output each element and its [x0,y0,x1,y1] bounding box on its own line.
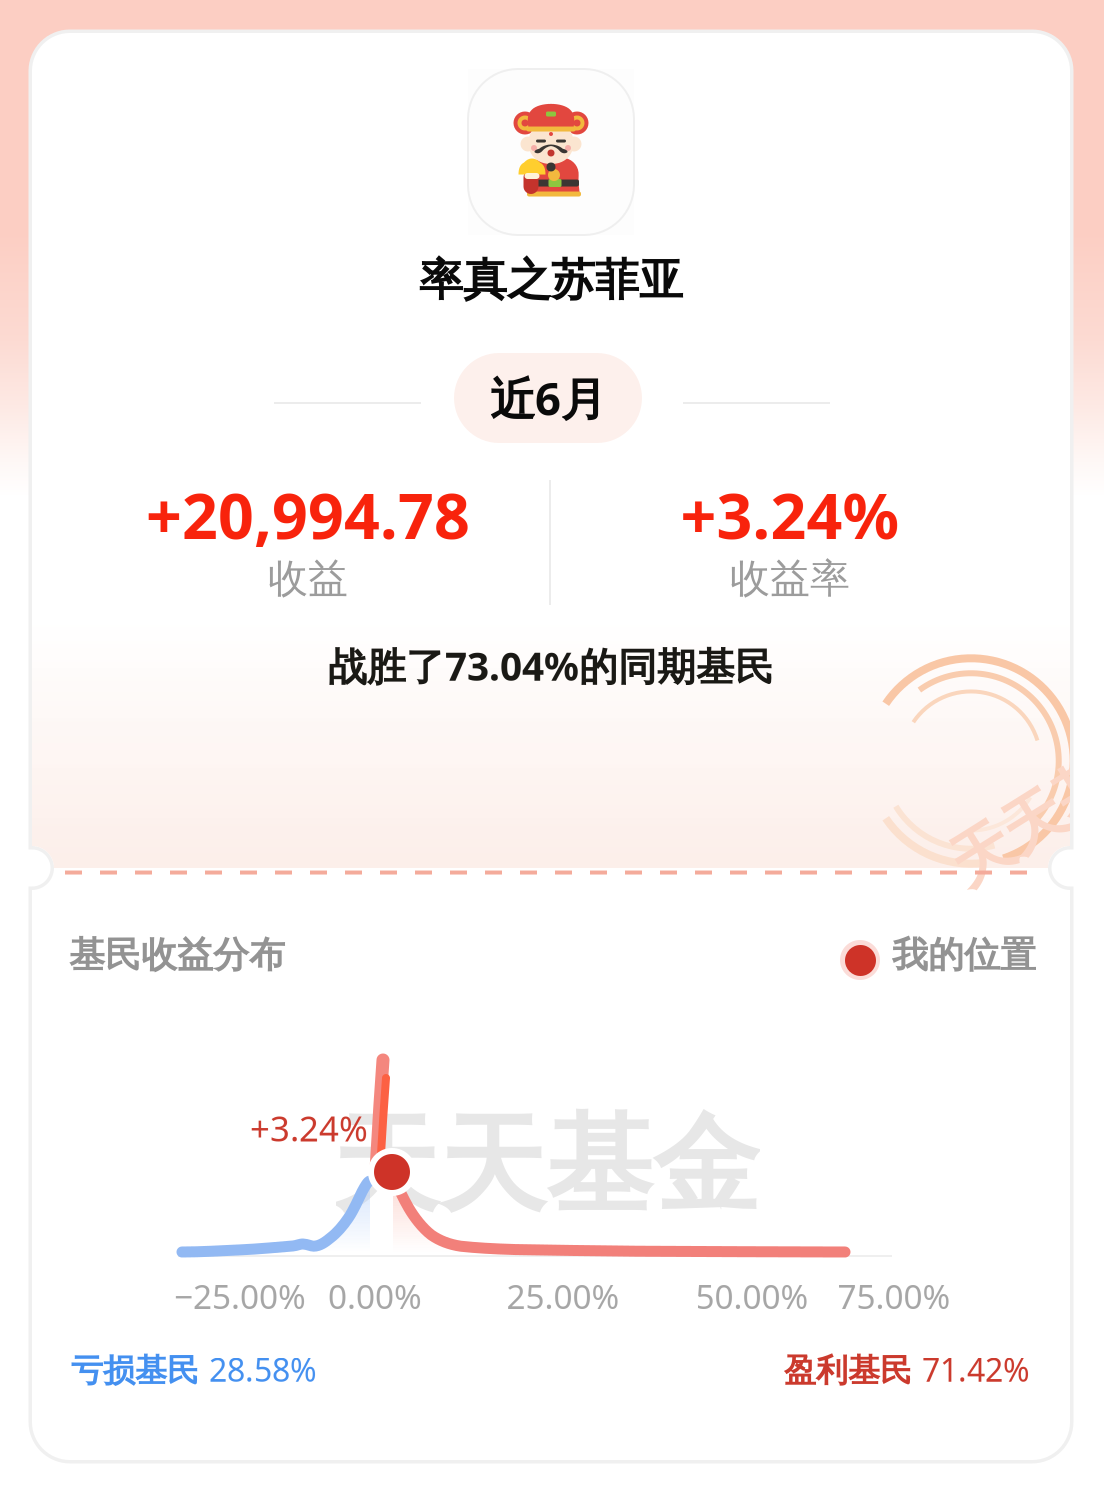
staticText: 近6月 [490,368,606,428]
staticText: 收益 [268,554,348,603]
staticText: 50.00% [695,1274,808,1318]
staticText: 天天基金 [332,1100,760,1231]
staticText: 基民收益分布 [69,933,285,977]
staticText: +3.24% [250,1105,368,1151]
staticText: 天天基金 [937,768,1104,843]
staticText: 25.00% [506,1274,619,1318]
staticText: +3.24% [680,473,899,556]
staticText: −25.00% [174,1274,306,1318]
staticText: 亏损基民 28.58% [71,1348,317,1390]
staticText: 战胜了73.04%的同期基民 [328,640,774,691]
staticText: 我的位置 [892,933,1036,977]
staticText: 0.00% [328,1274,422,1318]
staticText: 率真之苏菲亚 [419,253,683,307]
staticText: 收益率 [730,554,850,603]
staticText: 75.00% [837,1274,950,1318]
staticText: 盈利基民 71.42% [784,1348,1030,1390]
staticText: +20,994.78 [146,473,470,556]
